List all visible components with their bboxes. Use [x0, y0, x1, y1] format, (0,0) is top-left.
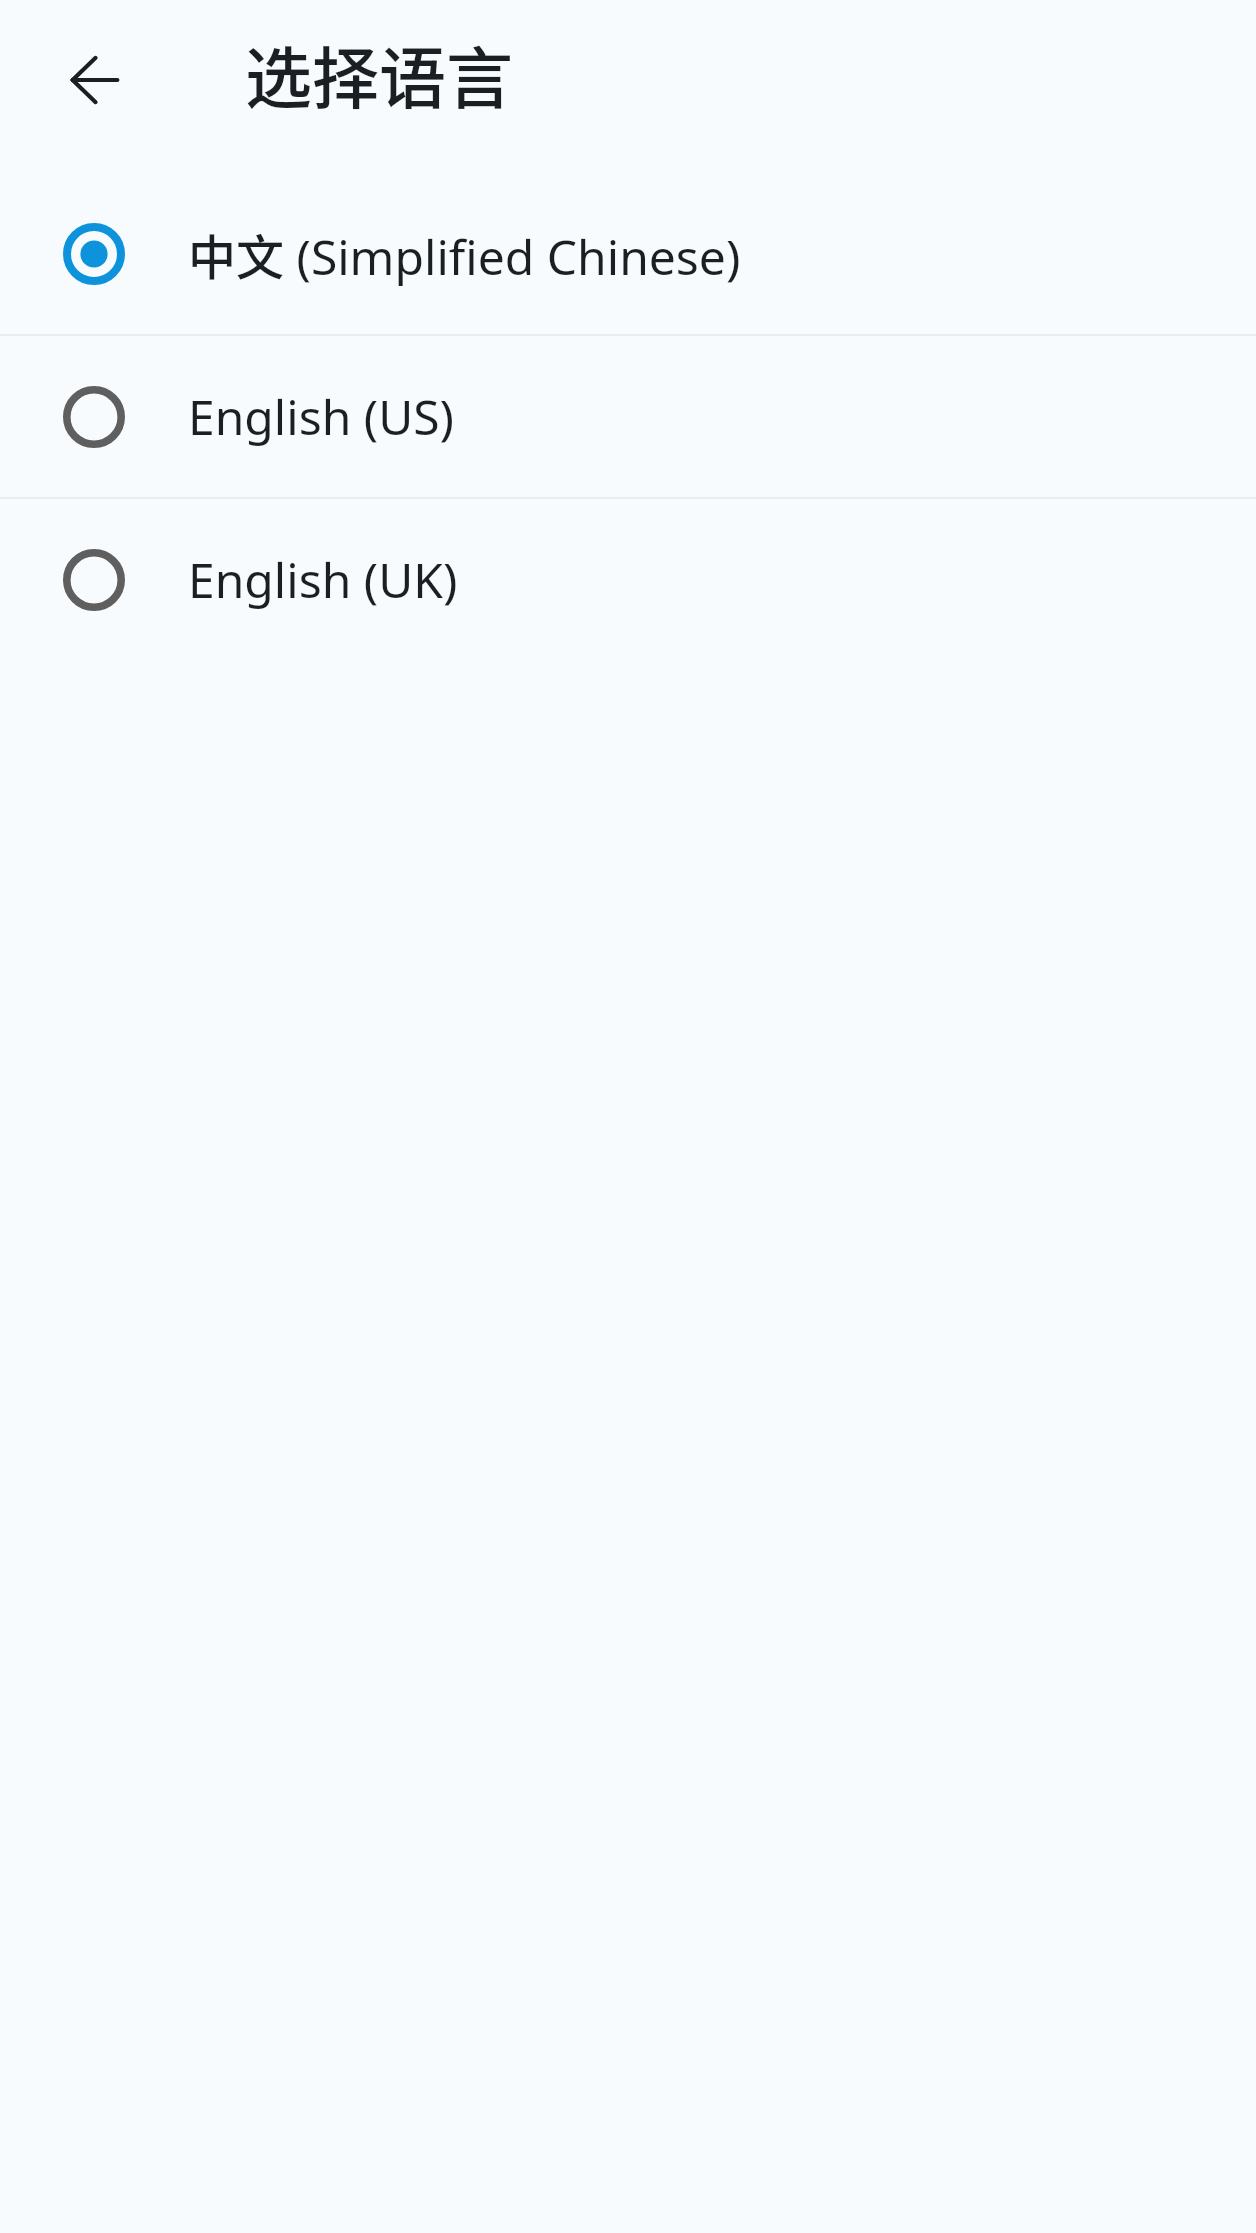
button[interactable]: English (UK): [0, 499, 1256, 660]
staticText: English (UK): [188, 547, 458, 612]
staticText: English (US): [188, 384, 455, 449]
button[interactable]: English (US): [0, 336, 1256, 497]
button[interactable]: Back: [50, 35, 140, 125]
staticText: 中文 (Simplified Chinese): [188, 219, 741, 289]
button[interactable]: 中文 (Simplified Chinese): [0, 173, 1256, 334]
staticText: 选择语言: [245, 25, 513, 122]
